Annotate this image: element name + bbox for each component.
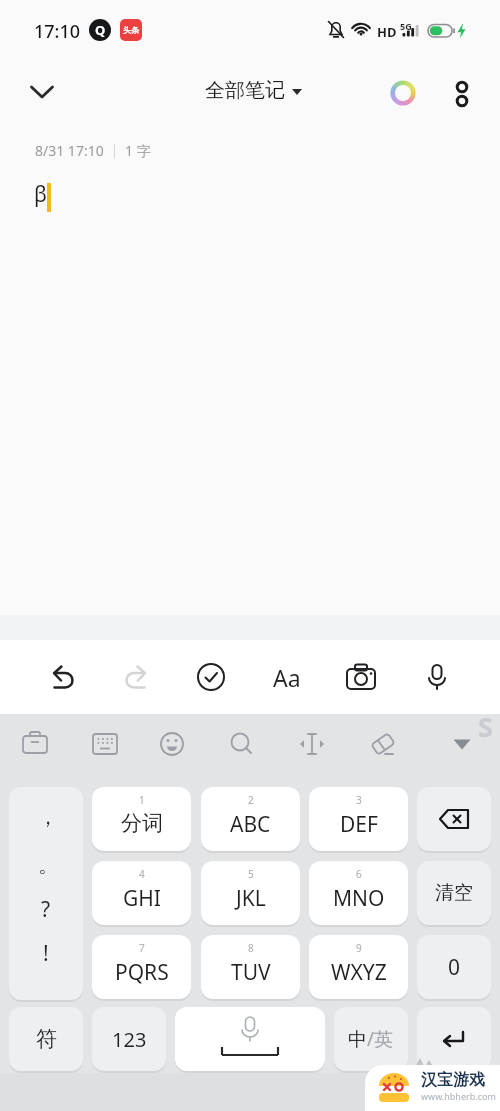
staticText: 2 [248,793,254,807]
staticText: 全部笔记 [205,78,285,103]
staticText: 4 [139,867,145,881]
staticText: 。 [38,853,58,878]
staticText: 0 [448,953,461,982]
staticText: 5G [400,20,412,32]
button[interactable]: 7 [92,935,191,999]
button[interactable]: 5 [201,861,300,925]
staticText: DEF [340,810,378,839]
staticText: 6 [356,867,362,881]
button[interactable]: Aa [262,652,312,702]
button[interactable] [13,722,57,766]
button[interactable]: 清空 [417,861,491,925]
button[interactable] [290,722,334,766]
button[interactable] [186,652,236,702]
staticText: 1 字 [125,141,151,160]
staticText: WXYZ [331,958,387,987]
staticText: TUV [231,958,271,987]
staticText: ? [41,895,51,924]
button[interactable]: 9 [309,935,408,999]
button[interactable] [150,722,194,766]
button[interactable] [37,652,87,702]
staticText: MNO [333,884,385,913]
button[interactable]: 1 [92,787,191,851]
button[interactable]: 全部笔记 [205,78,302,103]
staticText: 符 [36,1026,57,1052]
staticText: GHI [123,884,161,913]
staticText: ABC [230,810,271,839]
staticText: 7 [139,941,145,955]
staticText: www.hbherb.com [421,1090,496,1102]
staticText: S [478,708,493,745]
staticText: 1 [139,793,145,807]
button[interactable] [412,652,462,702]
staticText: 123 [112,1026,147,1053]
staticText: ! [43,939,49,968]
button[interactable]: 4 [92,861,191,925]
staticText: 清空 [435,881,473,905]
staticText: PQRS [115,958,169,987]
staticText: HD [377,23,397,41]
button[interactable] [361,722,405,766]
button[interactable] [448,76,478,112]
button[interactable]: 符 [9,1007,83,1071]
staticText: 头条 [123,25,139,35]
button[interactable] [390,80,416,106]
staticText: 8/31 17:10 [35,141,104,160]
button[interactable]: 0 [417,935,491,999]
button[interactable] [336,652,386,702]
staticText: Q [95,21,106,39]
staticText: JKL [236,884,266,913]
staticText: 分词 [121,810,163,836]
staticText: 3 [356,793,362,807]
button[interactable] [440,722,484,766]
staticText: 5 [248,867,254,881]
staticText: 8 [248,941,254,955]
button[interactable] [417,1007,491,1071]
staticText: β [34,180,47,209]
button[interactable] [220,722,264,766]
button[interactable]: 2 [201,787,300,851]
button[interactable]: 6 [309,861,408,925]
button[interactable] [20,68,64,112]
button[interactable]: 3 [309,787,408,851]
staticText: 中/英 [348,1026,394,1052]
button[interactable] [175,1007,325,1071]
button[interactable] [83,722,127,766]
staticText: 汉宝游戏 [421,1070,485,1090]
staticText: 17:10 [34,19,81,44]
button[interactable]: 中/英 [334,1007,408,1071]
button[interactable] [417,787,491,851]
button[interactable] [112,652,162,702]
button[interactable]: 8 [201,935,300,999]
staticText: 9 [356,941,362,955]
staticText: ， [38,805,58,830]
button[interactable]: 123 [92,1007,166,1071]
button[interactable]: ， [9,787,83,1000]
staticText: Aa [273,662,301,693]
